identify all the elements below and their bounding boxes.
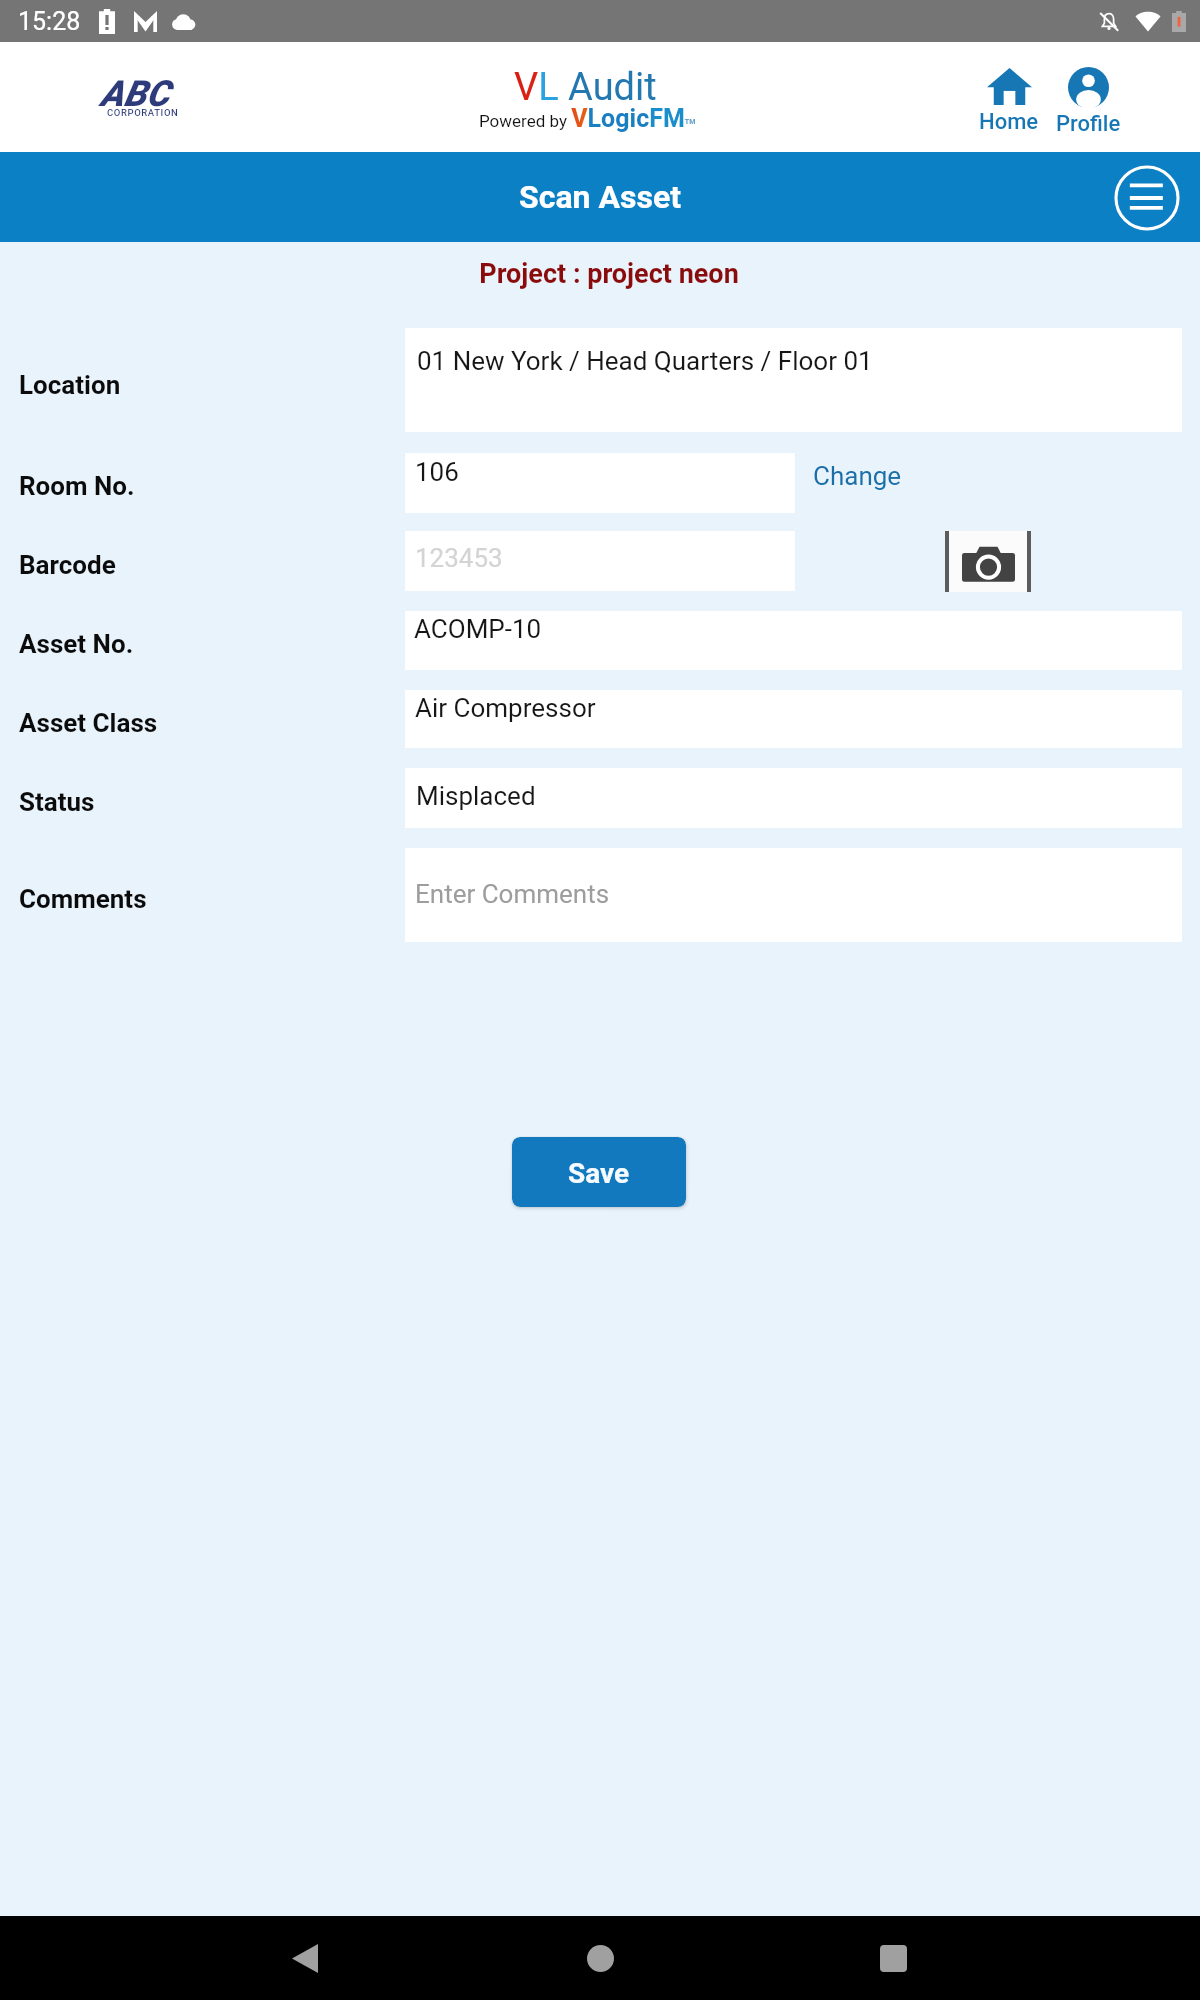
staticText: Save — [568, 1157, 630, 1190]
staticText: Comments — [19, 884, 147, 914]
staticText: 01 New York / Head Quarters / Floor 01 — [417, 346, 873, 376]
button[interactable]: Home — [555, 1916, 645, 2000]
button[interactable]: Open menu — [1114, 165, 1180, 231]
staticText: ACOMP-10 — [414, 614, 542, 644]
button[interactable]: Back — [260, 1916, 350, 2000]
button[interactable]: Scan barcode with camera — [945, 531, 1031, 592]
staticText: Enter Comments — [415, 879, 610, 909]
button[interactable]: ACOMP-10 — [405, 611, 1182, 670]
button[interactable]: Recent apps — [848, 1916, 938, 2000]
staticText: 123453 — [415, 543, 503, 573]
button[interactable]: Change — [803, 455, 912, 497]
staticText: Powered by VLogicFMTM — [479, 104, 696, 133]
staticText: VL Audit — [514, 65, 657, 110]
staticText: Barcode — [19, 550, 116, 580]
staticText: 106 — [415, 457, 459, 487]
button[interactable]: Save — [512, 1137, 686, 1207]
staticText: 15:28 — [18, 7, 81, 36]
button[interactable]: 01 New York / Head Quarters / Floor 01 — [405, 328, 1182, 432]
button[interactable]: Home — [977, 66, 1041, 137]
staticText: CORPORATION — [107, 107, 179, 118]
staticText: ABC — [100, 73, 170, 115]
button[interactable]: 106 — [405, 453, 795, 513]
button[interactable]: Profile — [1054, 65, 1123, 139]
staticText: Room No. — [19, 471, 135, 501]
staticText: Location — [19, 370, 121, 400]
staticText: Scan Asset — [519, 178, 682, 216]
staticText: Change — [813, 461, 902, 491]
button[interactable]: Misplaced — [405, 768, 1182, 828]
staticText: Project : project neon — [9, 258, 1200, 290]
button[interactable]: Enter Comments — [405, 848, 1182, 942]
staticText: Asset No. — [19, 629, 134, 659]
staticText: Profile — [1056, 111, 1121, 137]
staticText: Misplaced — [416, 781, 536, 811]
button[interactable]: 123453 — [405, 531, 795, 591]
staticText: Air Compressor — [415, 693, 596, 723]
staticText: Asset Class — [19, 708, 158, 738]
staticText: Status — [19, 787, 95, 817]
button[interactable]: Air Compressor — [405, 690, 1182, 748]
staticText: Home — [979, 109, 1039, 135]
